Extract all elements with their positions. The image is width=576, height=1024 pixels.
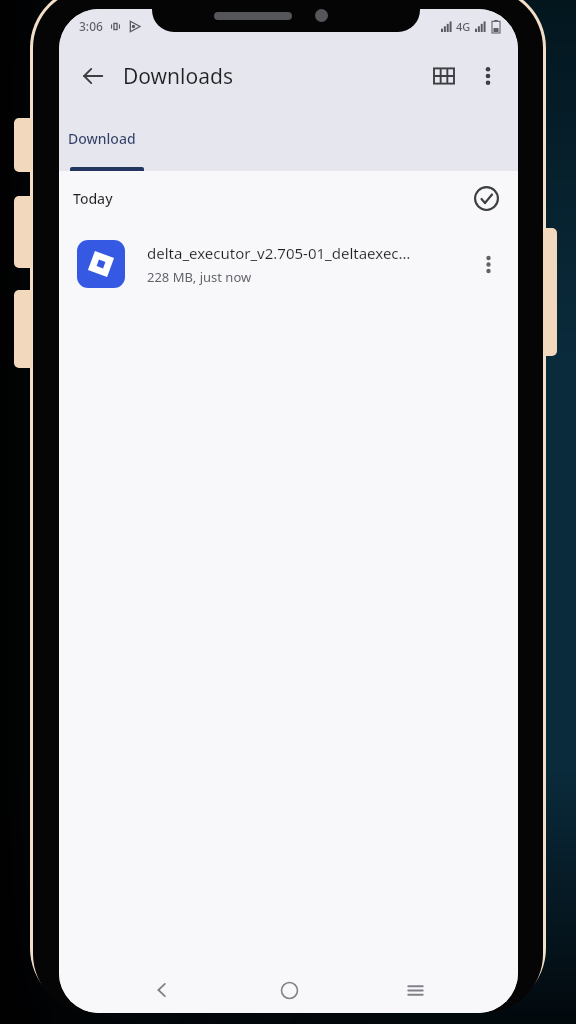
- staticText: delta_executor_v2.705-01_deltaexec…: [147, 243, 411, 263]
- button[interactable]: Item options: [466, 242, 510, 286]
- button[interactable]: Download: [59, 109, 145, 167]
- button[interactable]: Home: [266, 967, 312, 1013]
- button[interactable]: Back: [71, 54, 115, 98]
- button[interactable]: delta_executor_v2.705-01_deltaexec…: [59, 225, 518, 303]
- staticText: Today: [73, 189, 113, 208]
- button[interactable]: Grid view: [422, 54, 466, 98]
- staticText: Download: [68, 129, 136, 148]
- staticText: 228 MB, just now: [147, 268, 252, 286]
- staticText: 3:06: [79, 18, 103, 34]
- button[interactable]: More options: [466, 54, 510, 98]
- button[interactable]: Select all: [468, 180, 504, 216]
- staticText: 4G: [456, 19, 471, 34]
- staticText: Downloads: [123, 62, 233, 91]
- button[interactable]: Recent apps: [392, 967, 438, 1013]
- button[interactable]: Back: [139, 967, 185, 1013]
